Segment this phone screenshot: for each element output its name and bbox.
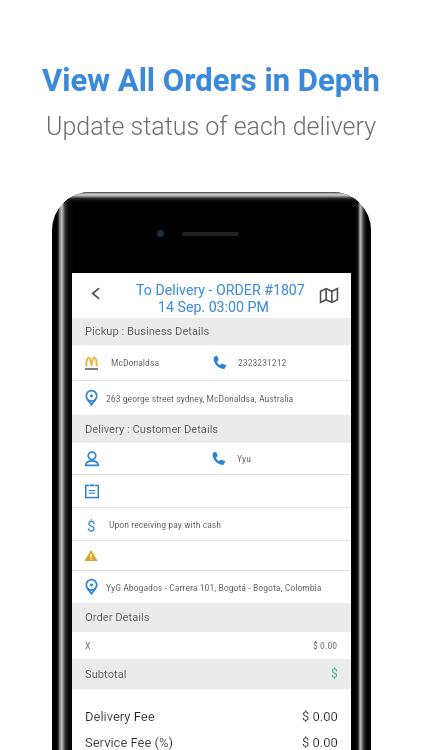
button[interactable]: McDonaldsa [72, 345, 351, 380]
button[interactable]: Back [72, 271, 119, 316]
staticText: 263 george street sydney, McDonaldsa, Au… [106, 393, 294, 404]
staticText: X [85, 640, 91, 651]
staticText: Delivery : Customer Details [85, 423, 219, 436]
staticText: $ [331, 667, 338, 681]
staticText: Subtotal [85, 668, 127, 681]
button[interactable] [72, 475, 351, 507]
staticText: Delivery Fee [85, 709, 155, 724]
staticText: View All Orders in Depth [0, 62, 422, 98]
staticText: Upon receiving pay with cash [109, 519, 222, 530]
staticText: Pickup : Business Details [85, 325, 210, 338]
staticText: McDonaldsa [111, 357, 160, 368]
staticText: Order Details [85, 611, 150, 624]
staticText: To Delivery - ORDER #1807 [136, 282, 305, 299]
button[interactable]: Service Fee (%) [85, 735, 338, 750]
staticText: $ 0.00 [302, 709, 338, 724]
staticText: Service Fee (%) [85, 735, 174, 750]
staticText: $ 0.00 [313, 640, 338, 651]
button[interactable]: Yyu [72, 443, 351, 474]
staticText: 14 Sep. 03:00 PM [158, 299, 269, 316]
staticText: Yyu [237, 453, 251, 464]
button[interactable]: 263 george street sydney, McDonaldsa, Au… [72, 381, 351, 415]
staticText: 2323231212 [238, 357, 287, 368]
button[interactable]: X [85, 632, 338, 659]
button[interactable]: $ [72, 508, 351, 540]
button[interactable]: Delivery Fee [85, 708, 338, 725]
staticText: Update status of each delivery [0, 112, 422, 141]
staticText: YyG Abogados - Carrera 101, Bogotá - Bog… [106, 582, 322, 593]
staticText: $ [87, 517, 96, 532]
staticText: $ 0.00 [302, 735, 338, 750]
button[interactable] [72, 541, 351, 570]
button[interactable]: Map [306, 273, 351, 318]
button[interactable]: YyG Abogados - Carrera 101, Bogotá - Bog… [72, 571, 351, 603]
